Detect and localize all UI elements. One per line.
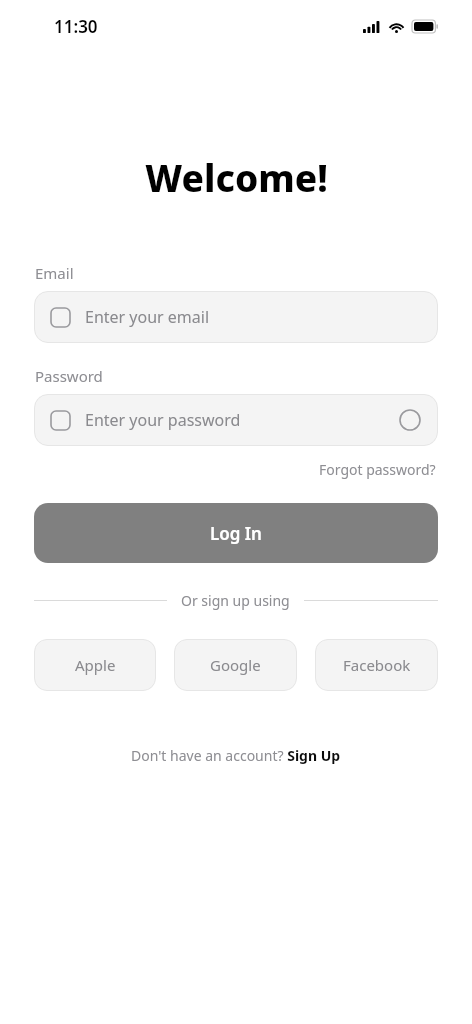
staticText: Enter your password <box>85 409 398 431</box>
staticText: Welcome! <box>145 152 328 202</box>
staticText: Enter your email <box>85 306 422 328</box>
staticText: Apple <box>75 655 116 675</box>
button[interactable]: Enter your password <box>34 394 438 446</box>
staticText: Email <box>35 263 74 283</box>
staticText: Log In <box>210 522 262 545</box>
button[interactable]: Log In <box>34 503 438 563</box>
button[interactable]: Facebook <box>315 639 438 691</box>
staticText: Don't have an account? Sign Up <box>131 746 341 765</box>
staticText: Google <box>210 655 261 675</box>
staticText: Password <box>35 366 103 386</box>
button[interactable]: Toggle password visibility <box>398 408 422 432</box>
staticText: 11:30 <box>54 15 98 38</box>
button[interactable]: Apple <box>34 639 156 691</box>
staticText: Or sign up using <box>181 591 290 610</box>
button[interactable]: Enter your email <box>34 291 438 343</box>
button[interactable]: Google <box>174 639 297 691</box>
button[interactable]: Don't have an account? Sign Up <box>127 743 345 768</box>
staticText: Forgot password? <box>319 460 436 479</box>
button[interactable]: Forgot password? <box>317 458 438 481</box>
staticText: Facebook <box>343 655 411 675</box>
